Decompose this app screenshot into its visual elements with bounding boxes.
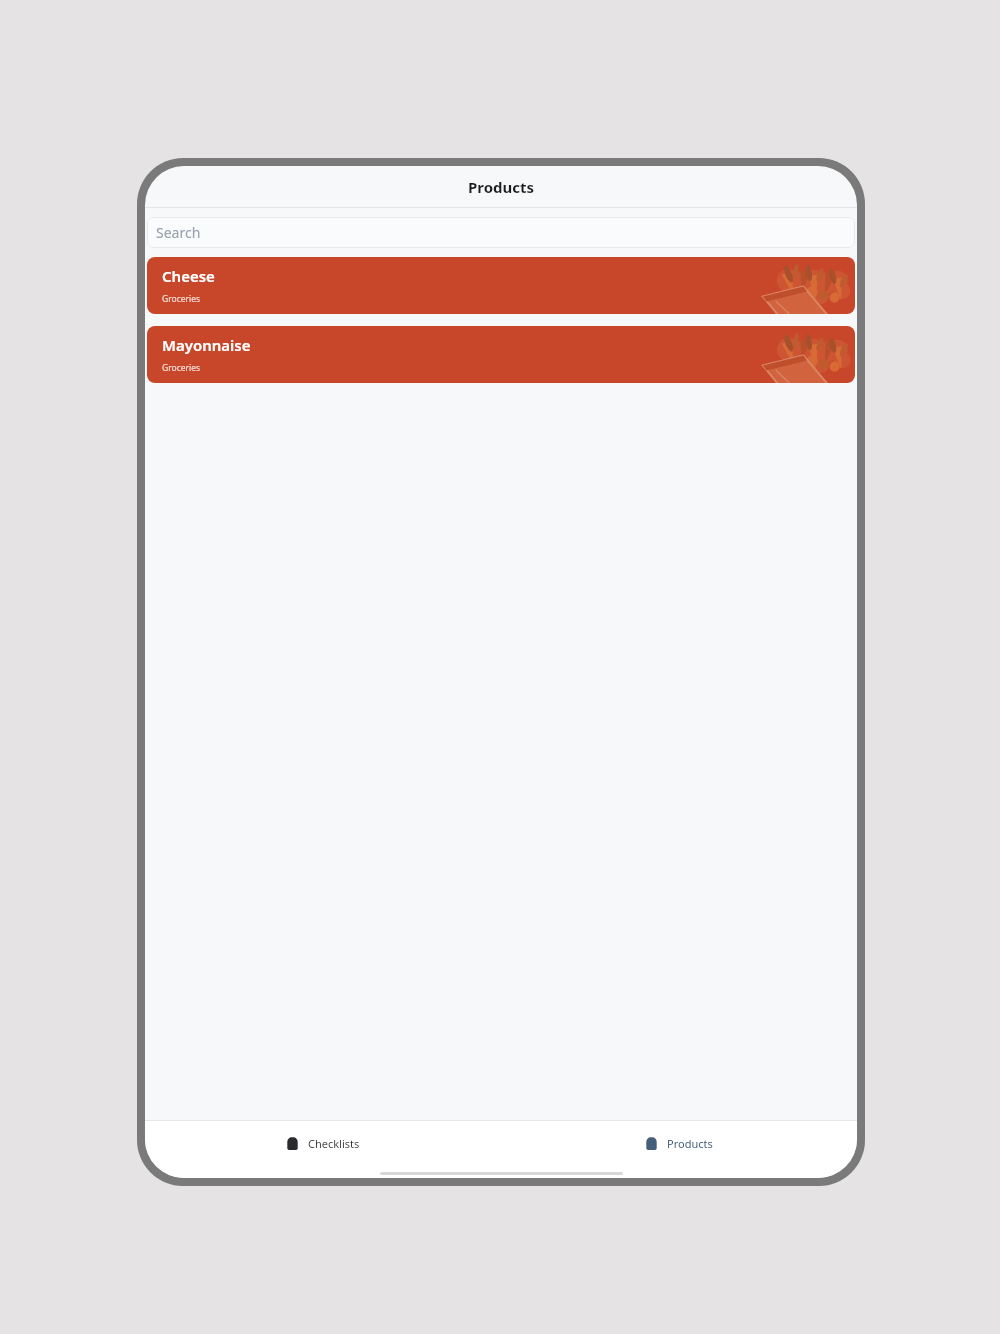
other: Products <box>645 1137 658 1150</box>
staticText: Cheese <box>162 266 215 286</box>
staticText: Products <box>667 1136 713 1151</box>
button[interactable]: Mayonnaise <box>147 326 855 383</box>
staticText: Checklists <box>308 1136 360 1151</box>
button[interactable]: Checklists <box>145 1121 501 1178</box>
staticText: Mayonnaise <box>162 335 251 355</box>
staticText: Groceries <box>162 362 201 374</box>
staticText: Products <box>468 177 535 197</box>
staticText: Search <box>156 223 201 242</box>
other: Checklists <box>286 1137 299 1150</box>
button[interactable]: Search <box>147 217 855 248</box>
button[interactable]: Products <box>501 1121 857 1178</box>
button[interactable]: Cheese <box>147 257 855 314</box>
staticText: Groceries <box>162 293 201 305</box>
